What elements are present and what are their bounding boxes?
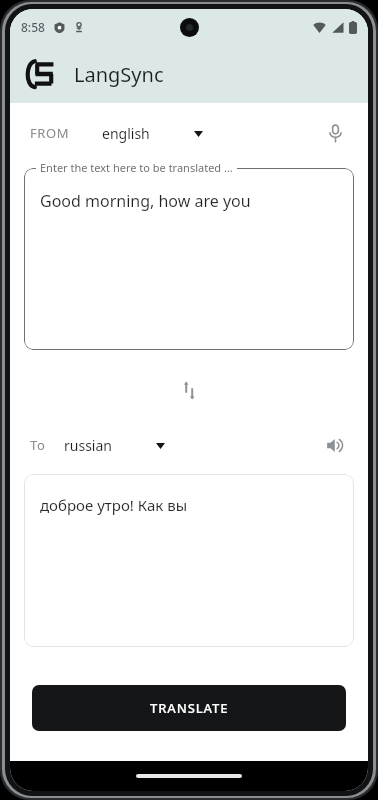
staticText: доброе утро! Как вы <box>40 495 188 515</box>
staticText: english <box>102 124 150 143</box>
staticText: 8:58 <box>21 19 45 35</box>
button[interactable]: english <box>102 120 203 147</box>
staticText: Enter the text here to be translated ... <box>40 160 233 175</box>
other: LangSync logo <box>24 58 56 90</box>
staticText: russian <box>64 436 112 455</box>
button[interactable]: Good morning, how are you <box>24 168 354 350</box>
button[interactable]: Swap languages <box>171 372 207 408</box>
staticText: LangSync <box>74 61 164 88</box>
button[interactable]: russian <box>64 432 165 459</box>
staticText: TRANSLATE <box>150 699 229 717</box>
button[interactable]: Listen <box>318 428 352 462</box>
staticText: To <box>30 436 46 454</box>
button[interactable]: доброе утро! Как вы <box>24 474 354 647</box>
button[interactable]: TRANSLATE <box>32 685 346 731</box>
staticText: FROM <box>30 124 70 142</box>
staticText: Good morning, how are you <box>40 190 251 212</box>
button[interactable]: Voice input <box>318 116 352 150</box>
